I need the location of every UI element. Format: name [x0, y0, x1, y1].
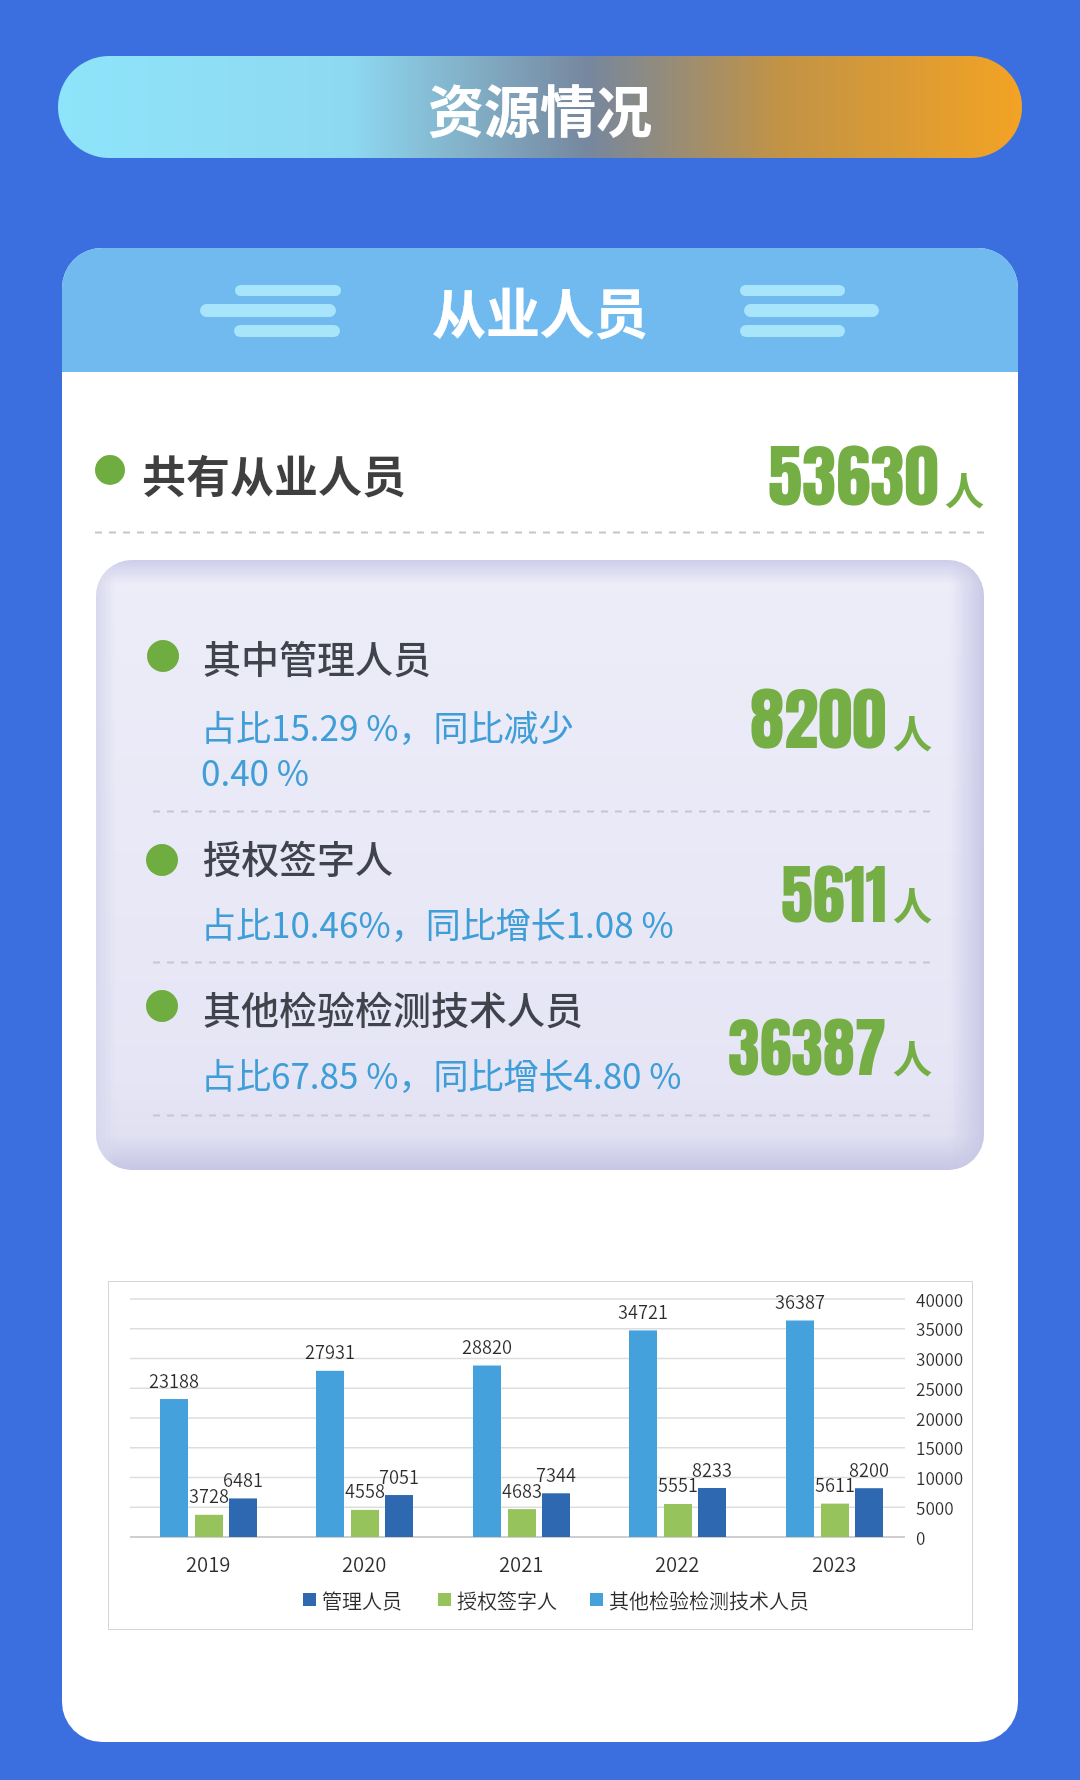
- staticText: 35000: [916, 1316, 964, 1340]
- staticText: 2023: [812, 1549, 857, 1573]
- staticText: 占比67.85 %，同比增长4.80 %: [201, 1048, 682, 1096]
- staticText: 2019: [186, 1549, 231, 1573]
- staticText: 23188: [149, 1367, 199, 1393]
- staticText: 管理人员: [322, 1586, 402, 1614]
- staticText: 资源情况: [428, 67, 652, 148]
- staticText: 4558: [345, 1477, 385, 1503]
- staticText: 授权签字人: [203, 829, 394, 884]
- staticText: 0.40 %: [201, 745, 310, 793]
- staticText: 8200: [849, 1456, 889, 1482]
- staticText: 0: [916, 1525, 926, 1549]
- staticText: 40000: [916, 1287, 964, 1311]
- staticText: 5611: [781, 847, 887, 943]
- staticText: 5611: [815, 1471, 855, 1497]
- staticText: 2020: [342, 1549, 387, 1573]
- staticText: 共有从业人员: [142, 442, 406, 498]
- staticText: 人: [893, 1028, 933, 1084]
- staticText: 占比10.46%，同比增长1.08 %: [201, 897, 674, 945]
- staticText: 10000: [916, 1465, 964, 1489]
- staticText: 2022: [655, 1549, 700, 1573]
- staticText: 7051: [379, 1463, 419, 1489]
- staticText: 5551: [658, 1471, 698, 1497]
- staticText: 53630: [768, 424, 939, 528]
- staticText: 其他检验检测技术人员: [203, 980, 584, 1035]
- staticText: 4683: [502, 1477, 542, 1503]
- staticText: 人: [893, 703, 933, 759]
- button[interactable]: 资源情况: [58, 56, 1022, 158]
- staticText: 其中管理人员: [203, 629, 432, 684]
- button[interactable]: 从业人员: [62, 248, 1018, 372]
- staticText: 占比15.29 %，同比减少: [201, 700, 574, 748]
- staticText: 28820: [462, 1333, 512, 1359]
- staticText: 34721: [618, 1298, 668, 1324]
- staticText: 7344: [536, 1461, 576, 1487]
- staticText: 人: [893, 875, 933, 931]
- staticText: 从业人员: [432, 271, 648, 349]
- staticText: 30000: [916, 1346, 964, 1370]
- staticText: 授权签字人: [457, 1586, 557, 1614]
- button[interactable]: [96, 965, 984, 1110]
- staticText: 其他检验检测技术人员: [609, 1586, 809, 1614]
- staticText: 36387: [775, 1288, 825, 1314]
- staticText: 6481: [223, 1466, 263, 1492]
- staticText: 27931: [305, 1338, 355, 1364]
- staticText: 2021: [499, 1549, 544, 1573]
- button[interactable]: [96, 610, 984, 810]
- staticText: 25000: [916, 1376, 964, 1400]
- staticText: 人: [945, 460, 985, 516]
- staticText: 36387: [728, 1000, 887, 1096]
- staticText: 3728: [189, 1482, 229, 1508]
- button[interactable]: [96, 815, 984, 960]
- staticText: 5000: [916, 1495, 954, 1519]
- staticText: 20000: [916, 1406, 964, 1430]
- staticText: 15000: [916, 1435, 964, 1459]
- staticText: 8200: [750, 667, 887, 771]
- staticText: 8233: [692, 1456, 732, 1482]
